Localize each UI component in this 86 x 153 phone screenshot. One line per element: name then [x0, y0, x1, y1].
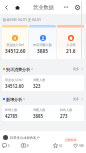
staticText: 转化人数 [60, 108, 73, 112]
button[interactable]: Share [21, 143, 29, 148]
button[interactable]: 我是来自成都的客户 [3, 135, 86, 140]
button[interactable]: 更多 [73, 96, 83, 102]
staticText: 消费人数 [33, 78, 46, 82]
staticText: 62 [59, 144, 63, 148]
button[interactable]: Close [72, 2, 82, 12]
staticText: 点赞有奖 [65, 138, 77, 142]
staticText: 营业数据 [33, 4, 54, 11]
staticText: 营业收入(元) [6, 43, 24, 47]
staticText: 入店率 [66, 43, 76, 47]
staticText: 更多 [73, 67, 80, 71]
staticText: 273 [60, 113, 68, 119]
button[interactable]: 入店率 [57, 25, 84, 59]
button[interactable]: More options [61, 2, 71, 12]
staticText: 消费人数 [33, 108, 46, 112]
staticText: 更多 [73, 97, 80, 101]
staticText: 986 [79, 144, 84, 148]
button[interactable]: 更多 [73, 66, 83, 72]
button[interactable]: 到店消费人数 [29, 25, 56, 59]
staticText: 到店消费人数 [33, 43, 52, 47]
staticText: 我是来自成都的客户 [10, 136, 40, 140]
staticText: 323 [33, 83, 41, 89]
button[interactable]: Comment [2, 143, 10, 148]
staticText: 6 [8, 144, 10, 148]
button[interactable]: 营业收入(元) [2, 25, 28, 59]
button[interactable]: 营业收入(元) [2, 75, 84, 91]
staticText: 34512.60 [5, 48, 26, 55]
button[interactable]: Back [1, 2, 12, 13]
button[interactable]: Favorite [53, 143, 63, 148]
staticText: 42785 [5, 113, 18, 119]
staticText: 8 [27, 144, 29, 148]
staticText: 数据日期 [3, 18, 17, 22]
staticText: 3885 [37, 48, 48, 55]
button[interactable]: Like [73, 143, 84, 148]
staticText: 新增分析 [6, 97, 22, 102]
button[interactable]: Home [12, 2, 23, 13]
staticText: 04-01 至 04-01 [18, 17, 41, 22]
button[interactable]: 新增人数 [2, 105, 84, 121]
staticText: 21.6 [66, 48, 76, 55]
staticText: 3885 [33, 113, 44, 119]
staticText: 新增人数 [5, 108, 18, 112]
staticText: 营业收入(元) [5, 78, 23, 82]
staticText: 到店消费分析 [6, 67, 30, 72]
staticText: 34512.60 [5, 83, 24, 89]
